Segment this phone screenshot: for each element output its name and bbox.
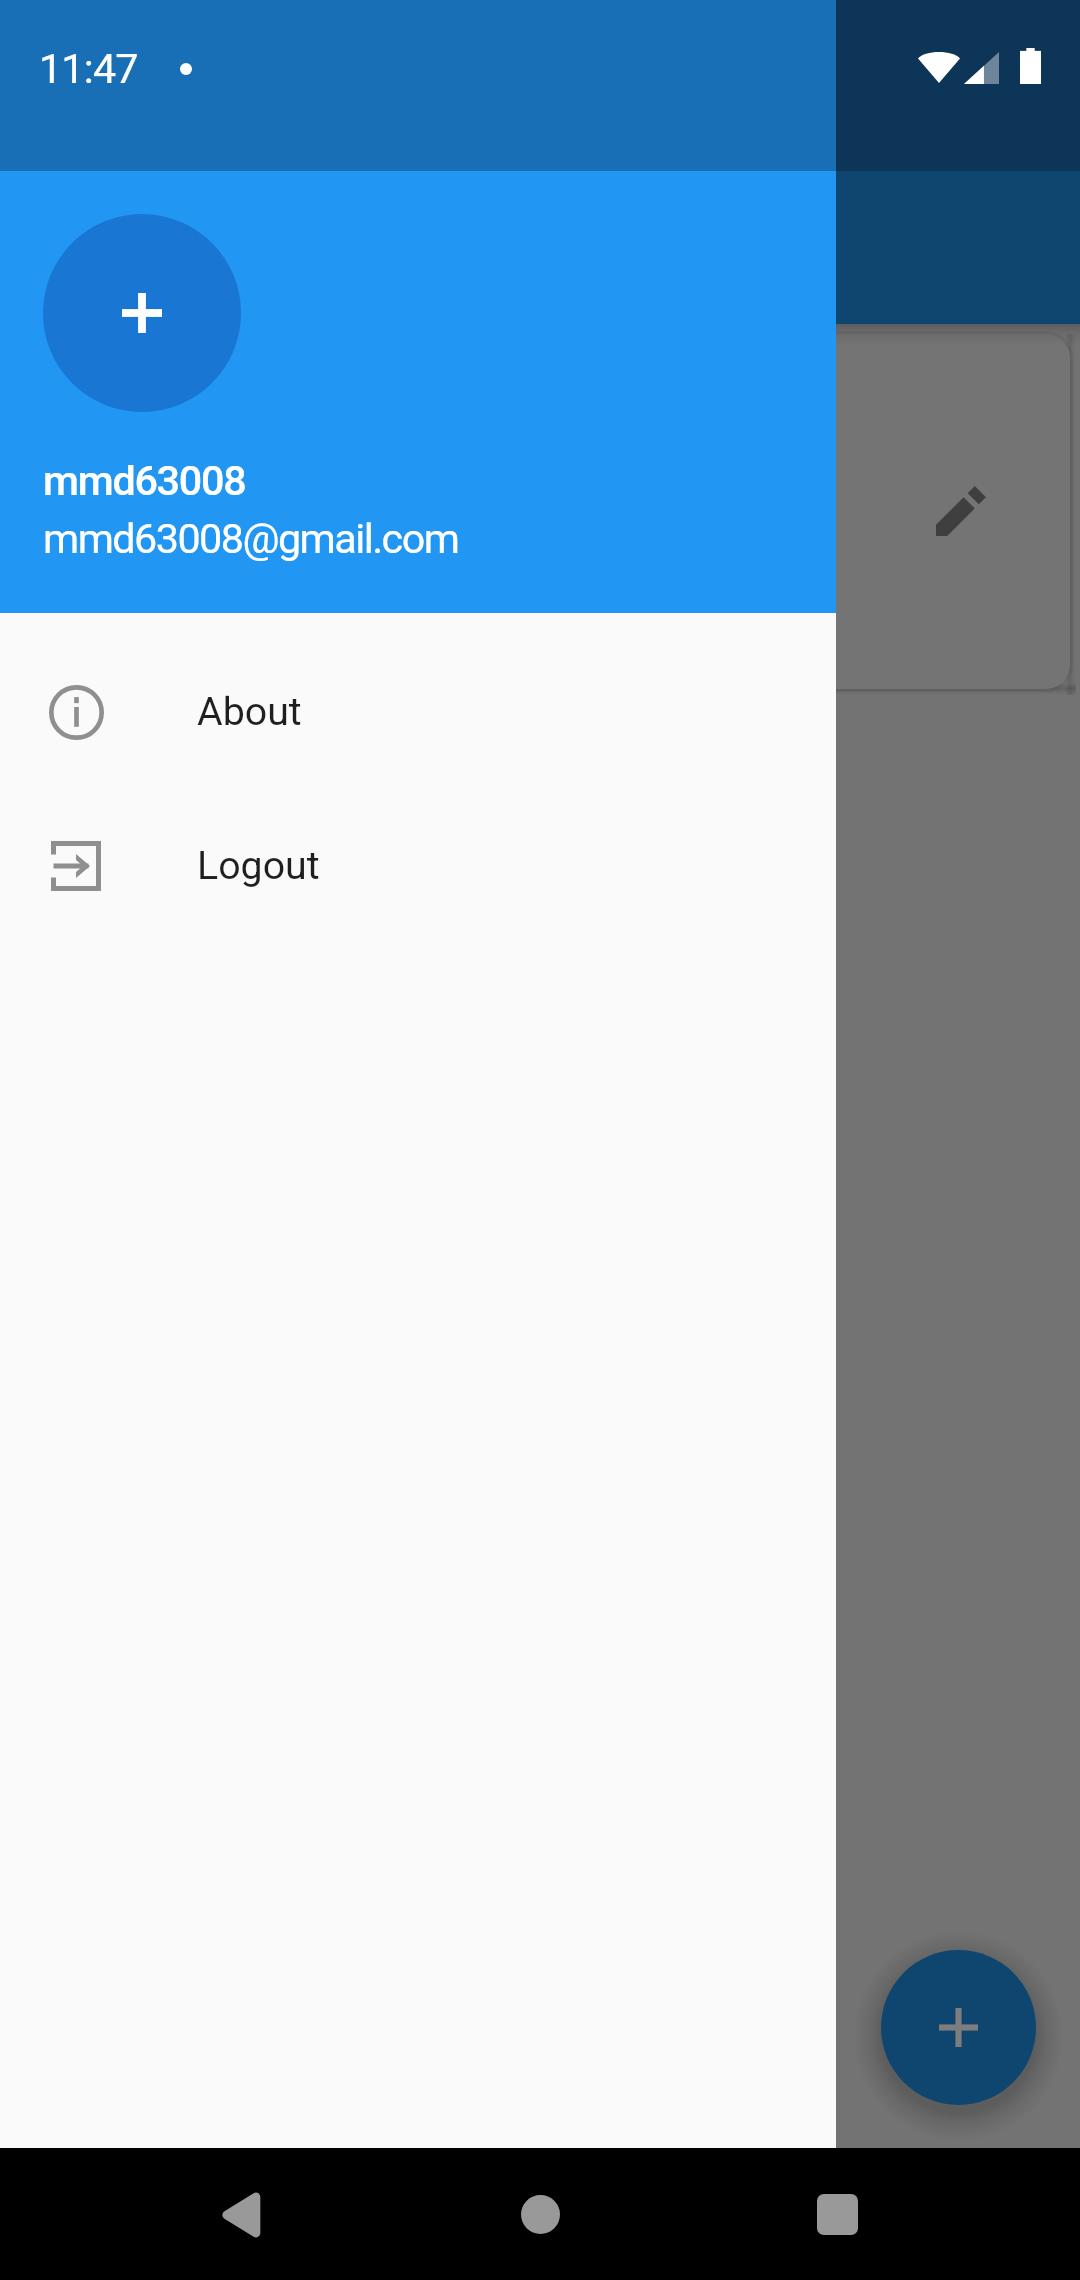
button[interactable]: Recents (796, 2173, 879, 2256)
button[interactable]: Home (499, 2173, 582, 2256)
button[interactable]: Add account (43, 214, 241, 412)
button[interactable]: Note (22, 334, 1070, 689)
staticText: 11:47 (39, 45, 138, 93)
staticText: mmd63008@gmail.com (43, 515, 459, 563)
button[interactable]: Logout (0, 789, 836, 943)
button[interactable]: About (0, 635, 836, 789)
staticText: Logout (197, 843, 320, 889)
staticText: mmd63008 (43, 457, 246, 505)
button[interactable]: Add (881, 1950, 1036, 2105)
button[interactable]: Back (198, 2173, 281, 2256)
staticText: About (197, 689, 302, 735)
